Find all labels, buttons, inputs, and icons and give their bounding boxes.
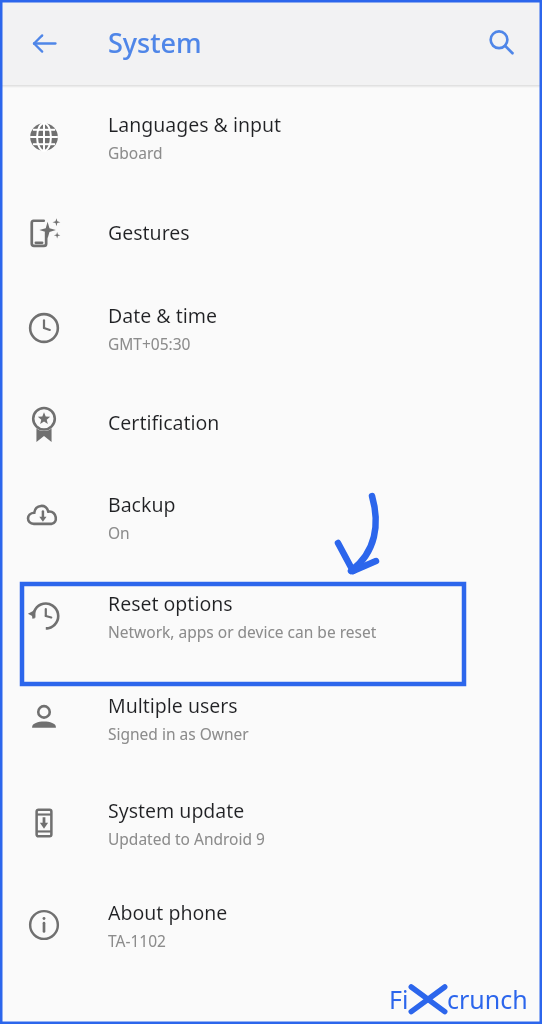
staticText: GMT+05:30 xyxy=(108,333,191,354)
other: Languages and input xyxy=(26,119,62,155)
button[interactable]: System update xyxy=(0,770,542,876)
staticText: Backup xyxy=(108,491,176,518)
staticText: crunch xyxy=(447,982,528,1016)
staticText: Reset options xyxy=(108,590,233,617)
staticText: Gestures xyxy=(108,219,190,246)
staticText: Languages & input xyxy=(108,111,282,138)
staticText: System update xyxy=(108,797,245,824)
staticText: Certification xyxy=(108,409,220,436)
other: Multiple users xyxy=(26,700,62,736)
other: Date and time xyxy=(26,310,62,346)
other: Backup xyxy=(26,499,62,535)
button[interactable]: Backup xyxy=(0,469,542,565)
button[interactable]: Gestures xyxy=(0,185,542,280)
staticText: Network, apps or device can be reset xyxy=(108,621,377,642)
staticText: About phone xyxy=(108,899,228,926)
button[interactable]: Date and time xyxy=(0,280,542,375)
button[interactable]: About phone xyxy=(0,876,542,974)
staticText: On xyxy=(108,522,130,543)
staticText: Multiple users xyxy=(108,692,238,719)
other: About phone xyxy=(26,907,62,943)
button[interactable]: Back xyxy=(20,19,68,67)
staticText: System xyxy=(108,24,202,61)
other: Gestures xyxy=(26,215,62,251)
button[interactable]: Multiple users xyxy=(0,666,542,770)
button[interactable]: Search xyxy=(477,19,525,67)
other: System update xyxy=(26,805,62,841)
other: Reset options xyxy=(26,598,62,634)
staticText: Date & time xyxy=(108,302,217,329)
staticText: Fi xyxy=(389,982,409,1016)
button[interactable]: Reset options xyxy=(0,565,542,666)
other: Certification xyxy=(26,404,62,440)
staticText: TA-1102 xyxy=(108,930,166,951)
staticText: Gboard xyxy=(108,142,163,163)
button[interactable]: Certification xyxy=(0,375,542,469)
staticText: Updated to Android 9 xyxy=(108,828,265,849)
staticText: Signed in as Owner xyxy=(108,723,249,744)
button[interactable]: Languages and input xyxy=(0,88,542,185)
